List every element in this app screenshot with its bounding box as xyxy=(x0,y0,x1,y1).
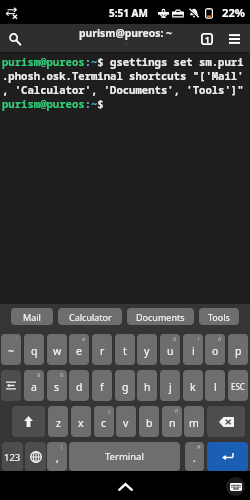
staticText: g xyxy=(122,380,129,394)
button[interactable]: Back xyxy=(110,472,140,500)
button[interactable]: Hide keyboard xyxy=(226,477,245,496)
button[interactable]: ã xyxy=(24,370,44,401)
staticText: d xyxy=(76,380,83,394)
button[interactable]: # xyxy=(185,442,204,471)
button[interactable]: b xyxy=(139,406,159,437)
staticText: , xyxy=(56,451,59,465)
staticText: Terminal xyxy=(105,450,144,463)
staticText: Mail xyxy=(23,311,41,323)
button[interactable]: p xyxy=(228,334,248,365)
button[interactable]: Mail xyxy=(11,308,53,325)
staticText: # xyxy=(197,443,201,450)
button[interactable]: è xyxy=(69,334,89,365)
staticText: s xyxy=(54,380,60,394)
button[interactable]: Change language xyxy=(25,442,46,471)
button[interactable]: z xyxy=(48,406,68,437)
staticText: Tools xyxy=(208,311,230,323)
staticText: r xyxy=(100,344,105,358)
button[interactable]: Enter xyxy=(207,442,248,471)
staticText: j xyxy=(169,380,172,394)
button[interactable]: Menu xyxy=(224,24,244,53)
button[interactable]: 123 xyxy=(2,442,23,471)
button[interactable]: ï xyxy=(183,334,203,365)
staticText: 22% xyxy=(222,5,245,20)
staticText: | xyxy=(60,443,64,450)
staticText: ç xyxy=(108,407,111,414)
staticText: b xyxy=(146,416,153,430)
button[interactable]: ESC xyxy=(228,370,248,401)
staticText: ã xyxy=(37,371,41,378)
staticText: o xyxy=(212,344,219,358)
staticText: ß xyxy=(60,371,64,378)
button[interactable]: Backspace xyxy=(207,406,245,437)
button[interactable]: ô xyxy=(205,334,225,365)
staticText: Calculator xyxy=(69,311,112,323)
staticText: ô xyxy=(218,335,222,342)
staticText: .phosh.osk.Terminal shortcuts "['Mail' xyxy=(2,69,244,83)
button[interactable]: q xyxy=(24,334,44,365)
button[interactable]: û xyxy=(160,334,180,365)
button[interactable]: ñ xyxy=(162,406,182,437)
button[interactable]: ß xyxy=(47,370,67,401)
button[interactable]: Search xyxy=(0,24,30,53)
button[interactable]: y xyxy=(137,334,157,365)
button[interactable]: v xyxy=(116,406,136,437)
button[interactable]: | xyxy=(47,442,67,471)
staticText: purism@pureos:~$ gsettings set sm.puri xyxy=(2,55,244,69)
button[interactable]: t xyxy=(115,334,135,365)
staticText: x xyxy=(78,416,84,430)
button[interactable]: g xyxy=(115,370,135,401)
staticText: l xyxy=(214,380,217,394)
button[interactable]: Tools xyxy=(199,308,239,325)
staticText: c xyxy=(101,416,107,430)
button[interactable]: w xyxy=(47,334,67,365)
staticText: è xyxy=(82,335,86,342)
staticText: a xyxy=(31,380,37,394)
staticText: e xyxy=(76,344,82,358)
staticText: z xyxy=(56,416,61,430)
staticText: 123 xyxy=(4,451,21,464)
staticText: , 'Calculator', 'Documents', 'Tools']" xyxy=(2,83,244,97)
staticText: m xyxy=(189,416,199,430)
staticText: Documents xyxy=(136,311,185,323)
button[interactable]: ç xyxy=(94,406,114,437)
staticText: ñ xyxy=(175,407,179,414)
button[interactable]: x xyxy=(71,406,91,437)
staticText: k xyxy=(190,380,196,394)
button[interactable]: r xyxy=(92,334,112,365)
button[interactable]: Shift xyxy=(12,406,45,437)
staticText: t xyxy=(123,344,127,358)
staticText: 5:51 AM xyxy=(109,6,148,20)
staticText: purism@pureos: ~ xyxy=(79,26,172,40)
button[interactable]: d xyxy=(69,370,89,401)
staticText: h xyxy=(144,380,151,394)
staticText: q xyxy=(31,344,38,358)
staticText: ` xyxy=(16,335,18,342)
staticText: u xyxy=(167,344,174,358)
staticText: 1 xyxy=(205,34,210,45)
staticText: û xyxy=(173,335,177,342)
button[interactable]: h xyxy=(137,370,157,401)
staticText: i xyxy=(192,344,195,358)
button[interactable]: Terminal xyxy=(69,442,180,471)
staticText: ESC xyxy=(231,381,245,392)
button[interactable]: j xyxy=(160,370,180,401)
button[interactable]: Tabs xyxy=(190,24,224,53)
button[interactable]: f xyxy=(92,370,112,401)
staticText: purism@pureos:~$ xyxy=(2,97,111,111)
button[interactable]: Calculator xyxy=(58,308,122,325)
staticText: v xyxy=(123,416,129,430)
staticText: ~ xyxy=(8,344,15,358)
button[interactable]: Documents xyxy=(127,308,194,325)
button[interactable]: ` xyxy=(1,334,21,365)
button[interactable]: Tab xyxy=(1,370,21,401)
button[interactable]: l xyxy=(205,370,225,401)
button[interactable]: m xyxy=(184,406,204,437)
button[interactable]: k xyxy=(183,370,203,401)
staticText: ï xyxy=(198,335,200,342)
staticText: ~ xyxy=(124,39,128,47)
staticText: n xyxy=(169,416,176,430)
staticText: f xyxy=(100,380,104,394)
staticText: w xyxy=(53,344,62,358)
staticText: . xyxy=(193,451,196,465)
